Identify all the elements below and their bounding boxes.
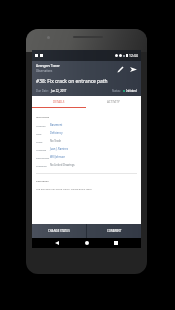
staticText: Jun 22, 2017 [51, 89, 67, 93]
button[interactable]: CHANGE STATUS [32, 224, 86, 238]
button[interactable]: Home [82, 238, 92, 248]
staticText: ACTIVITY [107, 100, 120, 104]
staticText: Location [36, 124, 46, 127]
button[interactable]: Send [127, 63, 139, 75]
staticText: Status: [112, 89, 121, 93]
staticText: Trade [36, 140, 43, 143]
staticText: Due Date: [36, 89, 49, 93]
staticText: #38: Fix crack on entrance path [36, 78, 108, 85]
staticText: Avengers Tower [36, 64, 60, 68]
staticText: No Trade [50, 139, 62, 143]
staticText: Type [36, 132, 42, 135]
staticText: DETAILS [53, 100, 65, 104]
button[interactable]: COMMENT [87, 224, 141, 238]
staticText: Initiated [126, 89, 137, 93]
button[interactable]: Recents [111, 238, 121, 248]
staticText: Drawings [36, 164, 47, 167]
staticText: COMMENT [107, 229, 122, 233]
button[interactable]: DETAILS [32, 96, 86, 107]
staticText: Information [36, 116, 50, 119]
staticText: Juan J. Ramirez [50, 147, 68, 151]
staticText: Will Johnson [50, 155, 65, 159]
staticText: Description [36, 180, 49, 183]
button[interactable]: Edit [114, 63, 126, 75]
staticText: Assignee [36, 148, 47, 151]
staticText: 12:34 [129, 53, 138, 58]
staticText: Deficiency [50, 131, 63, 135]
staticText: Observations [36, 69, 53, 73]
button[interactable]: ACTIVITY [86, 96, 141, 107]
staticText: Basement [50, 123, 63, 127]
button[interactable]: Back [52, 238, 62, 248]
staticText: Distribution [36, 156, 50, 159]
staticText: No Linked Drawings [50, 163, 75, 167]
staticText: The entrance has some cracks. Please pat… [36, 187, 92, 190]
staticText: CHANGE STATUS [48, 229, 70, 233]
